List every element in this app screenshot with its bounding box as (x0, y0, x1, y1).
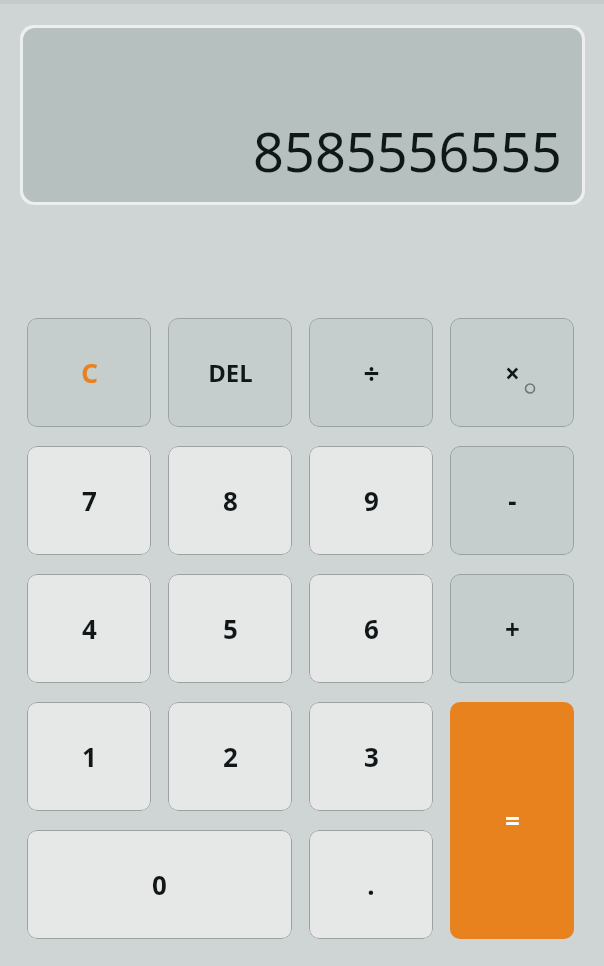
button[interactable]: 5 (168, 574, 292, 683)
staticText: + (505, 611, 520, 646)
button[interactable]: 1 (27, 702, 151, 811)
staticText: = (505, 803, 520, 838)
staticText: 8585556555 (253, 114, 562, 188)
staticText: - (508, 483, 517, 518)
button[interactable]: 2 (168, 702, 292, 811)
button[interactable]: 4 (27, 574, 151, 683)
staticText: 4 (82, 611, 97, 646)
staticText: 0 (152, 867, 167, 902)
staticText: 5 (223, 611, 238, 646)
staticText: C (81, 355, 98, 390)
button[interactable]: Minus (450, 446, 574, 555)
button[interactable]: Equals (450, 702, 574, 939)
button[interactable]: 9 (309, 446, 433, 555)
staticText: 7 (82, 483, 97, 518)
button[interactable]: 6 (309, 574, 433, 683)
button[interactable]: C (27, 318, 151, 427)
button[interactable]: 8 (168, 446, 292, 555)
staticText: DEL (208, 356, 253, 389)
button[interactable]: Plus (450, 574, 574, 683)
button[interactable]: Divide (309, 318, 433, 427)
staticText: 3 (364, 739, 379, 774)
button[interactable]: 0 (27, 830, 292, 939)
staticText: 1 (82, 739, 97, 774)
button[interactable]: Decimal point (309, 830, 433, 939)
staticText: × (505, 355, 520, 390)
button[interactable]: 8585556555 (23, 28, 582, 202)
button[interactable]: 3 (309, 702, 433, 811)
button[interactable]: DEL (168, 318, 292, 427)
staticText: 6 (364, 611, 379, 646)
staticText: 9 (364, 483, 379, 518)
button[interactable]: 7 (27, 446, 151, 555)
button[interactable]: Multiply (450, 318, 574, 427)
staticText: 8 (223, 483, 238, 518)
staticText: 2 (223, 739, 238, 774)
staticText: . (367, 867, 375, 902)
staticText: ÷ (363, 354, 380, 392)
